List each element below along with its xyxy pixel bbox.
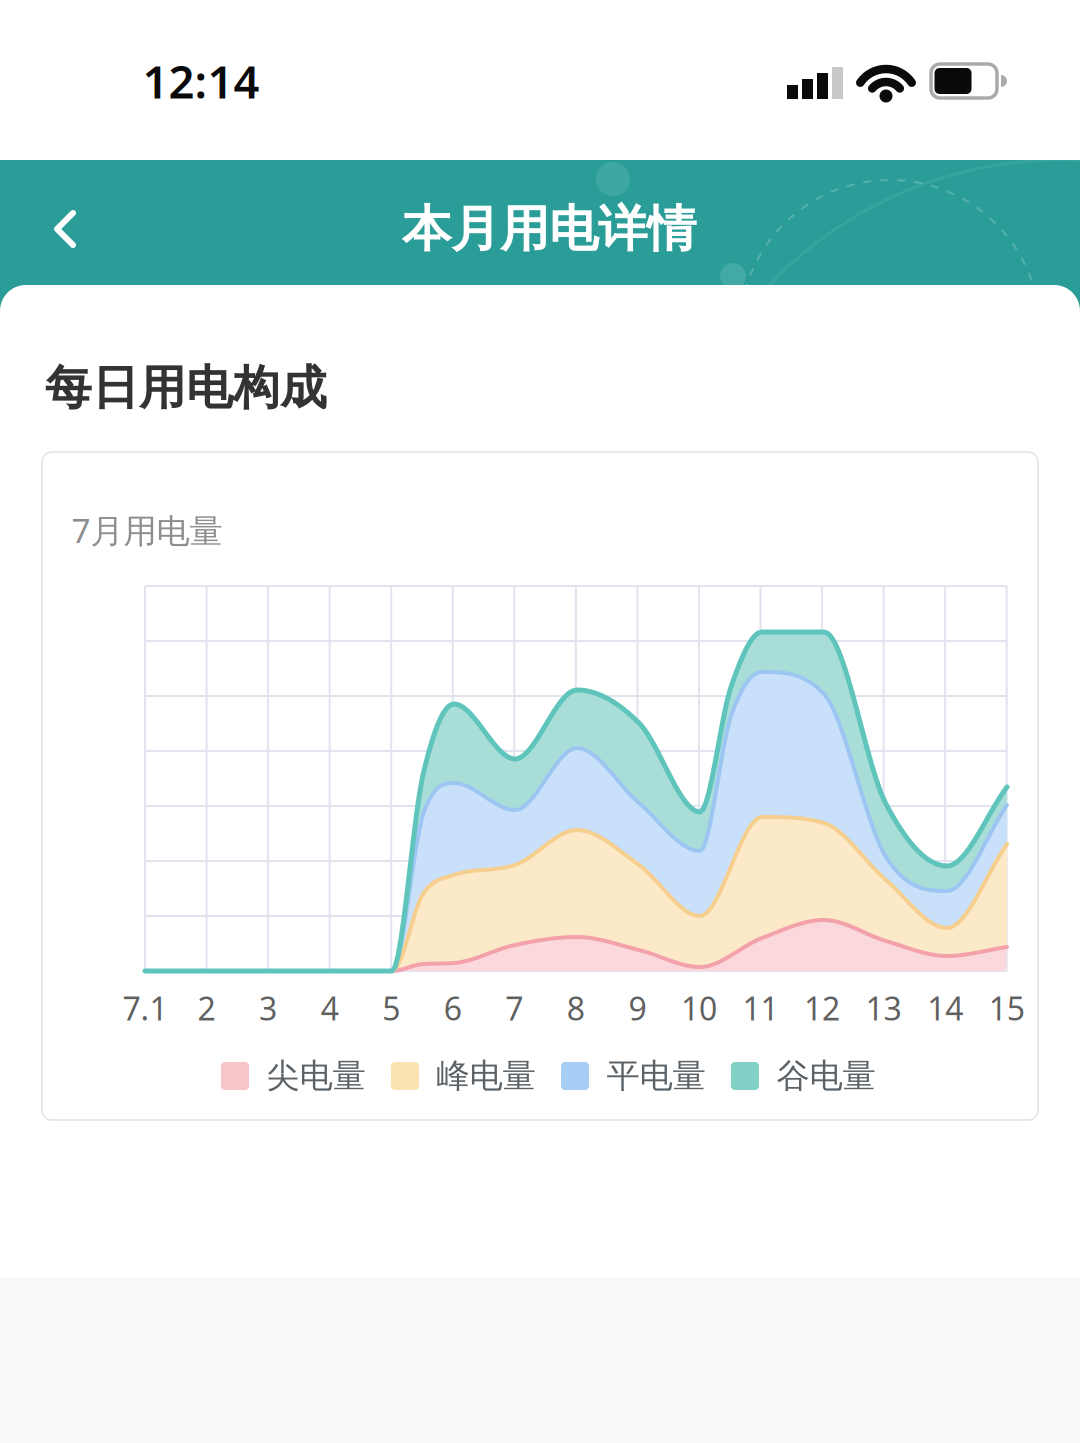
staticText: 每日用电构成 bbox=[45, 359, 327, 417]
staticText: 15 bbox=[989, 987, 1025, 1029]
staticText: 尖电量 bbox=[266, 1055, 365, 1096]
staticText: 3 bbox=[259, 987, 277, 1029]
staticText: 7月用电量 bbox=[71, 508, 222, 552]
staticText: 14 bbox=[927, 987, 963, 1029]
button[interactable]: Back bbox=[21, 185, 109, 273]
staticText: 谷电量 bbox=[776, 1055, 875, 1096]
staticText: 10 bbox=[681, 987, 717, 1029]
staticText: 平电量 bbox=[606, 1055, 705, 1096]
staticText: 2 bbox=[198, 987, 216, 1029]
staticText: 6 bbox=[444, 987, 462, 1029]
staticText: 12 bbox=[804, 987, 840, 1029]
staticText: 7.1 bbox=[122, 987, 167, 1029]
staticText: 12:14 bbox=[142, 51, 259, 111]
staticText: 7 bbox=[505, 987, 523, 1029]
staticText: 11 bbox=[742, 987, 778, 1029]
staticText: 峰电量 bbox=[436, 1055, 535, 1096]
staticText: 5 bbox=[382, 987, 400, 1029]
staticText: 13 bbox=[866, 987, 902, 1029]
staticText: 4 bbox=[321, 987, 339, 1029]
staticText: 本月用电详情 bbox=[402, 199, 696, 259]
staticText: 9 bbox=[628, 987, 646, 1029]
staticText: 8 bbox=[567, 987, 585, 1029]
